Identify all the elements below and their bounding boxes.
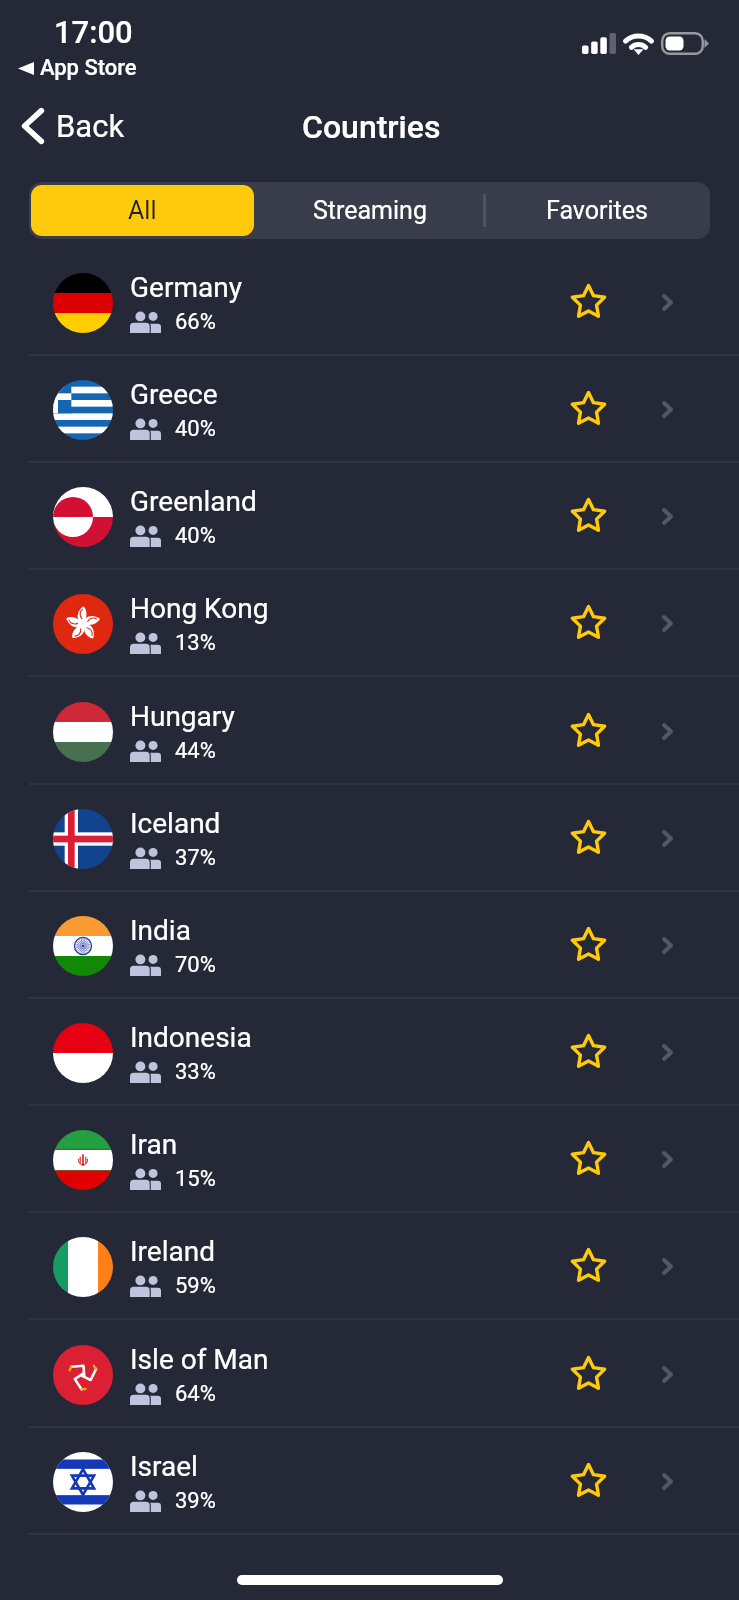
button[interactable]: Favorite	[556, 378, 620, 442]
button[interactable]: Favorite	[556, 485, 620, 549]
button[interactable]: Favorite	[556, 807, 620, 871]
button[interactable]: Favorite	[556, 700, 620, 764]
button[interactable]: Iceland	[0, 785, 739, 892]
staticText: 17:00	[54, 14, 133, 50]
button[interactable]: India	[0, 892, 739, 999]
staticText: 33%	[175, 1059, 216, 1085]
staticText: 66%	[175, 309, 216, 335]
button[interactable]: Israel	[0, 1428, 739, 1535]
button[interactable]: Favorites	[483, 182, 710, 239]
staticText: Greenland	[130, 485, 257, 518]
staticText: Germany	[130, 271, 242, 304]
staticText: Iran	[130, 1128, 178, 1161]
button[interactable]: All	[31, 185, 254, 236]
button[interactable]: Greenland	[0, 463, 739, 570]
button[interactable]: Ireland	[0, 1213, 739, 1320]
staticText: Israel	[130, 1450, 198, 1483]
staticText: Greece	[130, 378, 218, 411]
button[interactable]: Hong Kong	[0, 570, 739, 677]
staticText: 39%	[175, 1488, 216, 1514]
staticText: 40%	[175, 523, 216, 549]
staticText: Iceland	[130, 807, 221, 840]
staticText: Ireland	[130, 1235, 215, 1268]
button[interactable]: Favorite	[556, 592, 620, 656]
button[interactable]: Isle of Man	[0, 1321, 739, 1428]
button[interactable]: Greece	[0, 356, 739, 463]
button[interactable]: Indonesia	[0, 999, 739, 1106]
button[interactable]: Favorite	[556, 1235, 620, 1299]
staticText: India	[130, 914, 191, 947]
staticText: App Store	[40, 55, 137, 81]
button[interactable]: Favorite	[556, 1450, 620, 1514]
button[interactable]: Iran	[0, 1106, 739, 1213]
staticText: 37%	[175, 845, 216, 871]
button[interactable]: Hungary	[0, 678, 739, 785]
button[interactable]: Favorite	[556, 914, 620, 978]
button[interactable]: Germany	[0, 249, 739, 356]
button[interactable]: Back	[11, 100, 137, 152]
staticText: Isle of Man	[130, 1343, 269, 1376]
button[interactable]: Favorite	[556, 271, 620, 335]
button[interactable]: Favorite	[556, 1128, 620, 1192]
staticText: 40%	[175, 416, 216, 442]
button[interactable]: Streaming	[256, 182, 483, 239]
staticText: Countries	[302, 108, 441, 146]
staticText: 13%	[175, 630, 216, 656]
staticText: 15%	[175, 1166, 216, 1192]
button[interactable]: Favorite	[556, 1021, 620, 1085]
staticText: Favorites	[546, 196, 648, 225]
staticText: 64%	[175, 1381, 216, 1407]
staticText: 70%	[175, 952, 216, 978]
staticText: 59%	[175, 1273, 216, 1299]
staticText: Streaming	[313, 196, 427, 225]
staticText: Hungary	[130, 700, 235, 733]
staticText: All	[128, 196, 157, 225]
staticText: 44%	[175, 738, 216, 764]
staticText: Hong Kong	[130, 592, 269, 625]
staticText: Back	[56, 108, 125, 144]
button[interactable]: Favorite	[556, 1343, 620, 1407]
staticText: Indonesia	[130, 1021, 252, 1054]
